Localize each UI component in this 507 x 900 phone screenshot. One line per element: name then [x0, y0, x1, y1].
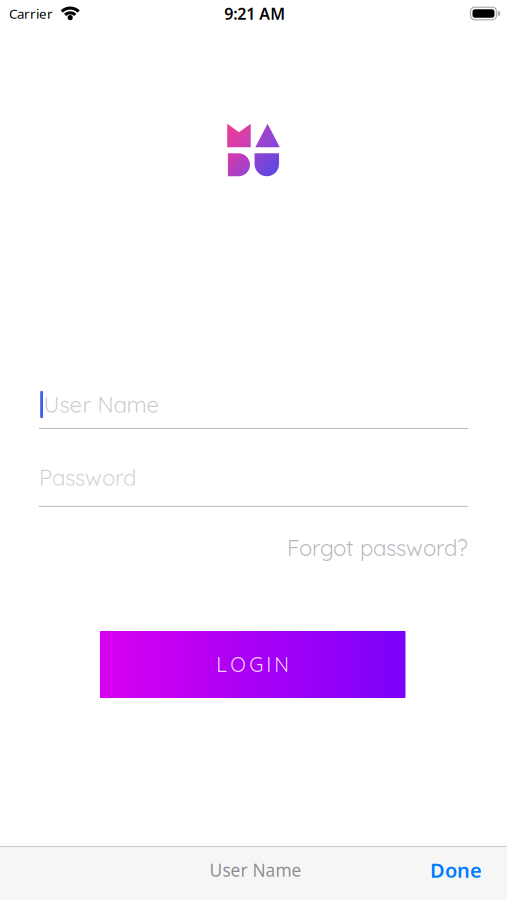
button[interactable]: Password	[39, 458, 468, 508]
staticText: Forgot password?	[287, 534, 468, 562]
staticText: Password	[39, 464, 136, 491]
button[interactable]: User Name	[39, 385, 468, 432]
button[interactable]: Forgot password?	[287, 534, 468, 562]
staticText: Done	[430, 857, 482, 883]
staticText: LOGIN	[216, 652, 289, 677]
button[interactable]: LOGIN	[100, 631, 405, 698]
staticText: User Name	[209, 858, 301, 881]
staticText: 9:21 AM	[224, 3, 285, 24]
button[interactable]: User Name	[209, 858, 301, 881]
staticText: Carrier	[9, 5, 53, 22]
staticText: User Name	[43, 391, 159, 418]
button[interactable]: Done	[430, 857, 482, 883]
